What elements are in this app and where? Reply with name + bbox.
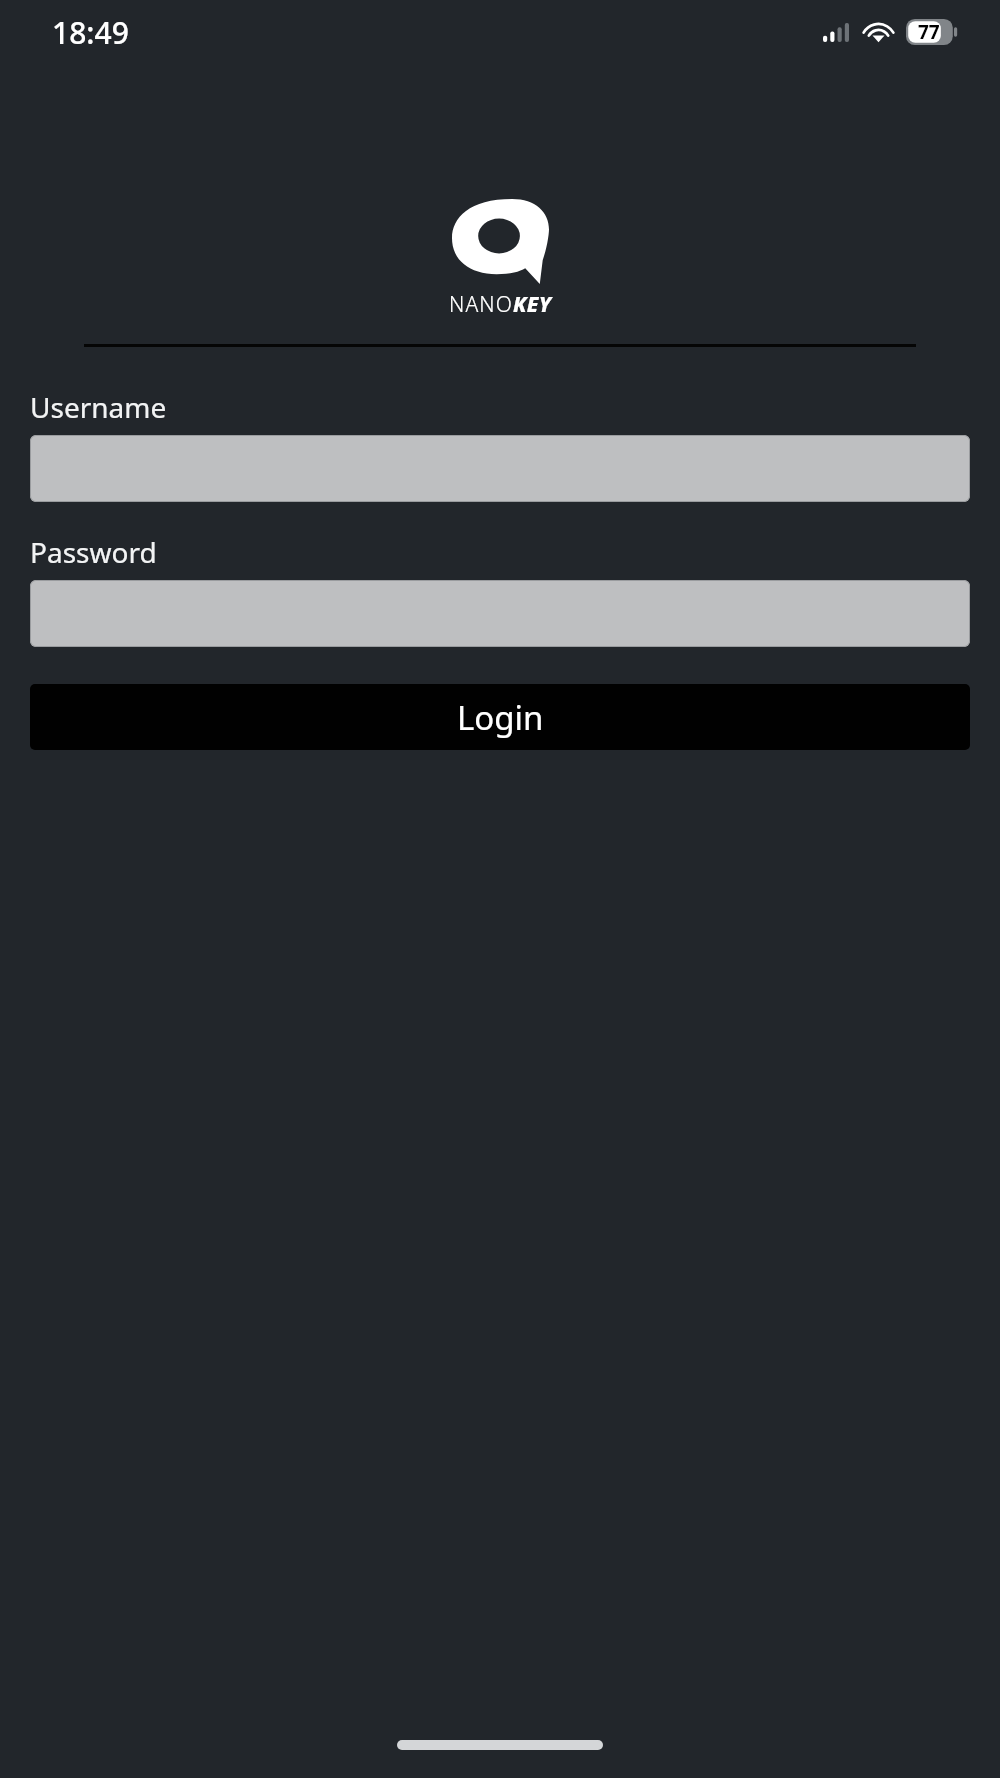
staticText: Password	[30, 533, 157, 571]
button[interactable]	[30, 435, 970, 502]
button[interactable]	[30, 580, 970, 647]
button[interactable]: Login	[30, 684, 970, 750]
staticText: 77	[918, 19, 940, 45]
staticText: KEY	[513, 290, 552, 319]
staticText: Login	[457, 695, 544, 740]
staticText: NANO	[449, 290, 513, 319]
staticText: Username	[30, 388, 167, 426]
staticText: 18:49	[52, 12, 129, 53]
